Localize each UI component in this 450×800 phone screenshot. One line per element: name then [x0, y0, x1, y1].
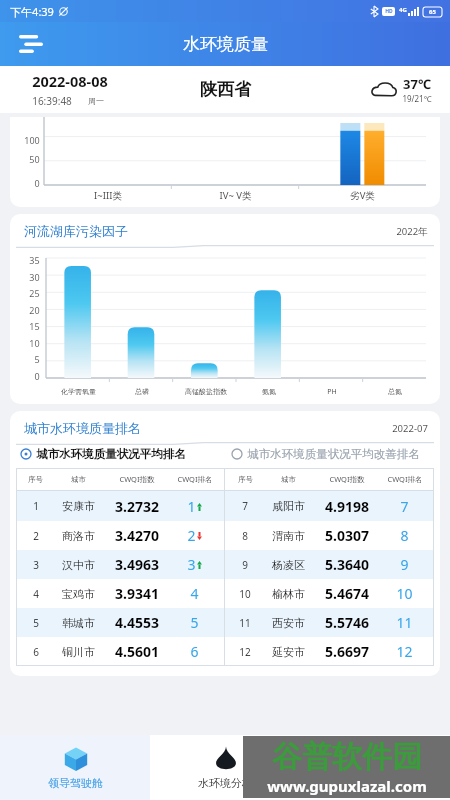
staticText: 高锰酸盐指数 — [185, 387, 227, 396]
staticText: 铜川市 — [62, 645, 95, 659]
staticText: 下午4:39 — [10, 4, 54, 19]
staticText: 3 — [187, 555, 196, 574]
button[interactable]: 12 — [225, 637, 434, 666]
staticText: 总磷 — [135, 387, 149, 396]
staticText: 11 — [239, 616, 251, 630]
staticText: 城市 — [281, 475, 296, 484]
staticText: CWQI排名 — [387, 474, 423, 484]
staticText: PH — [327, 387, 337, 397]
staticText: IV~ V类 — [219, 189, 252, 202]
staticText: 城市水环境质量状况平均改善排名 — [247, 447, 420, 461]
staticText: 4 — [190, 584, 199, 603]
staticText: 周一 — [88, 96, 104, 106]
staticText: HD — [385, 8, 393, 15]
staticText: 5 — [34, 353, 40, 365]
button[interactable]: 8 — [225, 521, 434, 550]
staticText: 3.2732 — [115, 497, 159, 516]
staticText: 15 — [29, 320, 40, 332]
button[interactable]: 水环境分析 — [150, 735, 300, 800]
staticText: 8 — [242, 529, 248, 543]
staticText: 杨凌区 — [272, 558, 305, 572]
staticText: 10 — [29, 337, 40, 349]
button[interactable]: 7 — [225, 491, 434, 521]
staticText: 序号 — [238, 475, 253, 484]
staticText: I~III类 — [94, 189, 122, 202]
staticText: 3 — [33, 558, 39, 572]
staticText: 8 — [400, 526, 409, 545]
button[interactable]: Menu — [16, 29, 46, 59]
staticText: 5.0307 — [325, 526, 369, 545]
staticText: CWQI排名 — [177, 474, 213, 484]
staticText: 4.5601 — [115, 642, 159, 661]
staticText: 西安市 — [272, 616, 305, 630]
button[interactable] — [300, 735, 450, 800]
staticText: 宝鸡市 — [62, 587, 95, 601]
staticText: 25 — [29, 287, 40, 299]
staticText: 5.5746 — [325, 613, 369, 632]
button[interactable]: 6 — [16, 637, 224, 666]
staticText: 延安市 — [272, 645, 305, 659]
staticText: 榆林市 — [272, 587, 305, 601]
staticText: 4.4553 — [115, 613, 159, 632]
staticText: 陕西省 — [200, 79, 251, 100]
staticText: 35 — [29, 254, 40, 266]
staticText: 2022年 — [396, 225, 428, 238]
staticText: 4 — [33, 587, 39, 601]
staticText: 37℃ — [403, 75, 431, 93]
staticText: 城市 — [71, 475, 86, 484]
staticText: 6 — [33, 645, 39, 659]
staticText: 2022-08-08 — [32, 71, 108, 91]
staticText: 5.6697 — [325, 642, 369, 661]
staticText: 4G — [399, 6, 407, 14]
staticText: 5.4674 — [325, 584, 369, 603]
staticText: 韩城市 — [62, 616, 95, 630]
staticText: 50 — [29, 153, 40, 165]
button[interactable]: 4 — [16, 579, 224, 608]
staticText: 20 — [29, 304, 40, 316]
staticText: 水环境分析 — [198, 776, 253, 790]
staticText: 19/21℃ — [402, 93, 432, 104]
staticText: 7 — [400, 497, 409, 516]
button[interactable]: 9 — [225, 550, 434, 579]
button[interactable]: 5 — [16, 608, 224, 637]
staticText: 6 — [190, 642, 199, 661]
button[interactable]: 城市水环境质量状况平均改善排名 — [231, 447, 434, 461]
staticText: 0 — [34, 177, 40, 189]
staticText: 渭南市 — [272, 529, 305, 543]
staticText: 5 — [190, 613, 199, 632]
staticText: 16:39:48 — [32, 94, 72, 108]
staticText: CWQI指数 — [329, 474, 365, 484]
staticText: 1 — [187, 497, 196, 516]
staticText: 5 — [33, 616, 39, 630]
staticText: 11 — [396, 613, 413, 632]
staticText: 商洛市 — [62, 529, 95, 543]
staticText: 10 — [396, 584, 413, 603]
staticText: www.gupuxlazal.com — [267, 776, 427, 796]
button[interactable]: 3 — [16, 550, 224, 579]
staticText: 劣V类 — [350, 189, 375, 202]
staticText: 氨氮 — [262, 387, 276, 396]
staticText: 水环境质量 — [183, 34, 268, 55]
button[interactable]: 1 — [16, 491, 224, 521]
staticText: 100 — [24, 134, 40, 146]
staticText: 领导驾驶舱 — [48, 776, 103, 790]
button[interactable]: 2 — [16, 521, 224, 550]
button[interactable]: 领导驾驶舱 — [0, 735, 150, 800]
staticText: 1 — [33, 499, 39, 513]
staticText: 9 — [400, 555, 409, 574]
staticText: 3.4270 — [115, 526, 159, 545]
staticText: 序号 — [28, 475, 43, 484]
staticText: 2 — [33, 529, 39, 543]
staticText: 10 — [239, 587, 251, 601]
staticText: 汉中市 — [62, 558, 95, 572]
staticText: 7 — [242, 499, 248, 513]
staticText: 化学需氧量 — [61, 387, 96, 396]
staticText: 2022-07 — [392, 422, 428, 435]
button[interactable]: 城市水环境质量状况平均排名 — [20, 447, 223, 461]
staticText: 2 — [187, 526, 196, 545]
staticText: 12 — [239, 645, 251, 659]
button[interactable]: 10 — [225, 579, 434, 608]
staticText: 9 — [242, 558, 248, 572]
button[interactable]: 11 — [225, 608, 434, 637]
staticText: 河流湖库污染因子 — [24, 223, 128, 239]
